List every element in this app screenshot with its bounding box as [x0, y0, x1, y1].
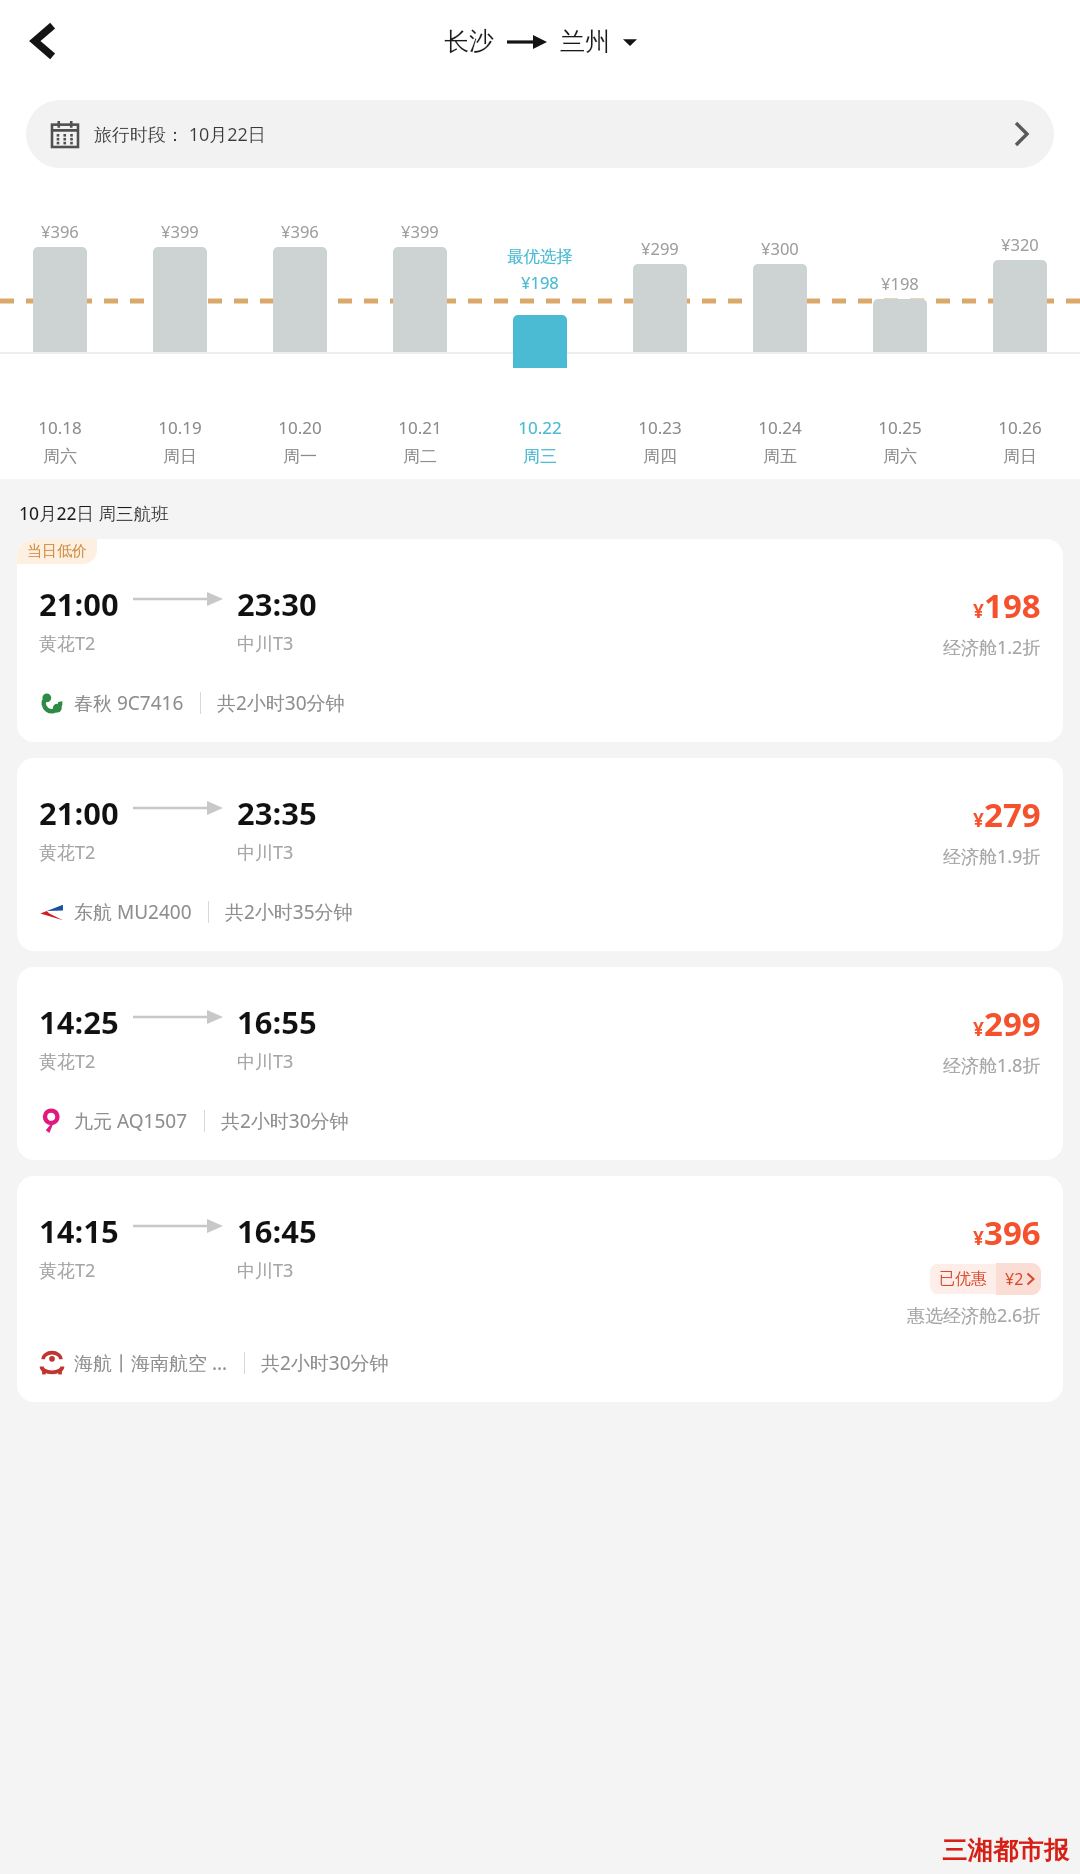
staticText: 最优选择 [507, 246, 573, 267]
staticText: 10.21 [398, 416, 442, 439]
staticText: 共2小时30分钟 [217, 690, 345, 716]
staticText: 中川T3 [237, 1049, 294, 1074]
staticText: 396 [984, 1210, 1041, 1255]
staticText: 10.22 [518, 416, 562, 439]
staticText: 黄花T2 [39, 631, 96, 656]
staticText: 春秋 9C7416 [74, 690, 184, 716]
staticText: 黄花T2 [39, 840, 96, 865]
staticText: 23:30 [237, 583, 317, 625]
button[interactable]: 10.21 [360, 416, 480, 467]
staticText: 10.26 [998, 416, 1042, 439]
staticText: 14:25 [39, 1001, 119, 1043]
button[interactable]: 10.23 [600, 416, 720, 467]
button[interactable]: ¥198 [840, 220, 960, 410]
staticText: ¥198 [881, 272, 919, 294]
staticText: 周五 [763, 446, 797, 467]
staticText: ¥299 [641, 237, 679, 259]
staticText: 东航 MU2400 [74, 899, 192, 925]
staticText: 299 [984, 1001, 1041, 1046]
button[interactable]: 14:25 [17, 967, 1063, 1160]
staticText: 旅行时段： 10月22日 [94, 122, 266, 147]
staticText: 共2小时35分钟 [225, 899, 353, 925]
staticText: 中川T3 [237, 1258, 294, 1283]
staticText: 10.19 [158, 416, 202, 439]
button[interactable]: ¥396 [0, 220, 120, 410]
staticText: 兰州 [560, 26, 610, 57]
button[interactable]: 10.19 [120, 416, 240, 467]
button[interactable]: 最优选择 [480, 220, 600, 410]
staticText: ¥2 [1005, 1268, 1024, 1290]
staticText: 10.24 [758, 416, 802, 439]
staticText: ¥ [973, 807, 984, 833]
button[interactable]: 10.22 [480, 416, 600, 467]
button[interactable]: 10.20 [240, 416, 360, 467]
staticText: 海航丨海南航空 ... [74, 1350, 228, 1376]
staticText: 21:00 [39, 583, 119, 625]
staticText: 经济舱1.9折 [943, 844, 1041, 869]
staticText: 经济舱1.2折 [943, 635, 1041, 660]
button[interactable]: ¥299 [600, 220, 720, 410]
button[interactable]: 长沙 [444, 26, 637, 57]
button[interactable]: 10.18 [0, 416, 120, 467]
button[interactable]: 21:00 [17, 758, 1063, 951]
staticText: ¥ [973, 1225, 984, 1251]
staticText: 黄花T2 [39, 1049, 96, 1074]
staticText: 长沙 [444, 26, 494, 57]
button[interactable]: 当日低价 [17, 539, 1063, 742]
staticText: 当日低价 [27, 542, 87, 561]
staticText: 10.25 [878, 416, 922, 439]
staticText: 10.23 [638, 416, 682, 439]
staticText: 九元 AQ1507 [74, 1108, 188, 1134]
staticText: 共2小时30分钟 [221, 1108, 349, 1134]
staticText: 23:35 [237, 792, 317, 834]
staticText: 279 [984, 792, 1041, 837]
button[interactable]: 10.26 [960, 416, 1080, 467]
staticText: 黄花T2 [39, 1258, 96, 1283]
staticText: 已优惠 [939, 1269, 987, 1289]
staticText: 共2小时30分钟 [261, 1350, 389, 1376]
staticText: 10.18 [38, 416, 82, 439]
staticText: 14:15 [39, 1210, 119, 1252]
button[interactable]: 已优惠 [930, 1263, 1041, 1295]
staticText: ¥ [973, 1016, 984, 1042]
staticText: 21:00 [39, 792, 119, 834]
staticText: 三湘都市报 [942, 1835, 1070, 1866]
staticText: ¥300 [761, 237, 799, 259]
staticText: ¥320 [1001, 233, 1039, 255]
staticText: 周六 [883, 446, 917, 467]
staticText: 10月22日 周三航班 [19, 501, 169, 525]
staticText: 周日 [163, 446, 197, 467]
staticText: ¥399 [161, 220, 199, 242]
staticText: 周四 [643, 446, 677, 467]
staticText: 中川T3 [237, 840, 294, 865]
staticText: 198 [984, 583, 1041, 628]
button[interactable]: ¥399 [360, 220, 480, 410]
button[interactable]: 旅行时段： 10月22日 [26, 100, 1054, 168]
staticText: 周一 [283, 446, 317, 467]
button[interactable]: 14:15 [17, 1176, 1063, 1402]
staticText: 经济舱1.8折 [943, 1053, 1041, 1078]
button[interactable]: ¥320 [960, 220, 1080, 410]
staticText: 周六 [43, 446, 77, 467]
staticText: 16:45 [237, 1210, 317, 1252]
staticText: 16:55 [237, 1001, 317, 1043]
staticText: ¥399 [401, 220, 439, 242]
staticText: ¥ [973, 598, 984, 624]
button[interactable]: Back [14, 12, 72, 70]
staticText: ¥198 [521, 271, 559, 293]
staticText: 周日 [1003, 446, 1037, 467]
button[interactable]: ¥300 [720, 220, 840, 410]
staticText: 周二 [403, 446, 437, 467]
staticText: 惠选经济舱2.6折 [907, 1303, 1041, 1328]
button[interactable]: 10.25 [840, 416, 960, 467]
button[interactable]: ¥399 [120, 220, 240, 410]
staticText: ¥396 [281, 220, 319, 242]
staticText: ¥396 [41, 220, 79, 242]
staticText: 10.20 [278, 416, 322, 439]
button[interactable]: ¥396 [240, 220, 360, 410]
staticText: 中川T3 [237, 631, 294, 656]
staticText: 周三 [523, 446, 557, 467]
button[interactable]: 10.24 [720, 416, 840, 467]
